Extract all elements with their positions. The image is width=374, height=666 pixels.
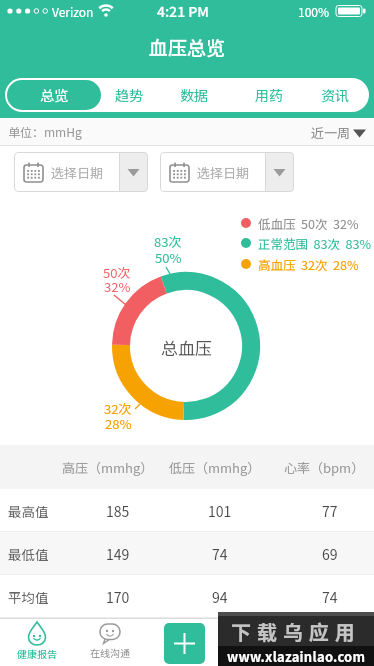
staticText: 资讯	[321, 85, 349, 105]
staticText: 选择日期	[51, 163, 119, 182]
staticText: 77	[322, 501, 338, 521]
staticText: 平均值	[8, 587, 49, 607]
button[interactable]: 健康报告	[8, 621, 66, 666]
button[interactable]: 数据	[164, 78, 224, 112]
staticText: 心率（bpm）	[284, 458, 365, 477]
staticText: 高压（mmhg）	[62, 458, 154, 477]
button[interactable]: 近一周	[311, 123, 366, 142]
staticText: 在线沟通	[90, 645, 130, 659]
staticText: 趋势	[115, 85, 143, 105]
staticText: 69	[322, 544, 338, 564]
button[interactable]: 选择日期	[14, 152, 148, 192]
staticText: 总血压	[161, 335, 212, 357]
staticText: 总览	[40, 85, 68, 105]
staticText: 最高值	[8, 501, 49, 521]
staticText: 高血压 32次 28%	[258, 255, 359, 273]
button[interactable]: 在线沟通	[81, 621, 139, 666]
staticText: 下载乌应用	[231, 617, 361, 646]
staticText: 32次	[104, 399, 132, 418]
staticText: 94	[212, 587, 228, 607]
staticText: 74	[212, 544, 228, 564]
staticText: 185	[106, 501, 130, 521]
staticText: Verizon	[52, 3, 94, 20]
staticText: 选择日期	[197, 163, 265, 182]
staticText: 4:21 PM	[157, 1, 209, 21]
staticText: 170	[106, 587, 130, 607]
button[interactable]: 趋势	[99, 78, 159, 112]
button[interactable]: 总览	[7, 80, 101, 110]
button[interactable]: 资讯	[305, 78, 365, 112]
staticText: 最低值	[8, 544, 49, 564]
staticText: 低血压 50次 32%	[258, 214, 359, 232]
staticText: 用药	[255, 85, 283, 105]
staticText: www.xlazainlao.com	[227, 647, 366, 666]
staticText: 28%	[105, 414, 132, 433]
staticText: 近一周	[311, 123, 351, 142]
staticText: 50%	[155, 248, 182, 267]
button[interactable]	[164, 623, 205, 664]
staticText: 单位：mmHg	[8, 123, 82, 140]
button[interactable]: 用药	[239, 78, 299, 112]
staticText: 83次	[154, 232, 182, 251]
staticText: 50次	[103, 263, 131, 282]
staticText: 74	[322, 587, 338, 607]
staticText: 149	[106, 544, 130, 564]
button[interactable]: 选择日期	[160, 152, 294, 192]
staticText: 数据	[180, 85, 208, 105]
staticText: 正常范围 83次 83%	[258, 234, 371, 252]
staticText: 血压总览	[149, 33, 226, 61]
staticText: 100%	[298, 3, 330, 20]
staticText: 低压（mmhg）	[169, 458, 261, 477]
staticText: 健康报告	[17, 646, 57, 660]
staticText: 32%	[104, 277, 131, 296]
staticText: 101	[208, 501, 232, 521]
